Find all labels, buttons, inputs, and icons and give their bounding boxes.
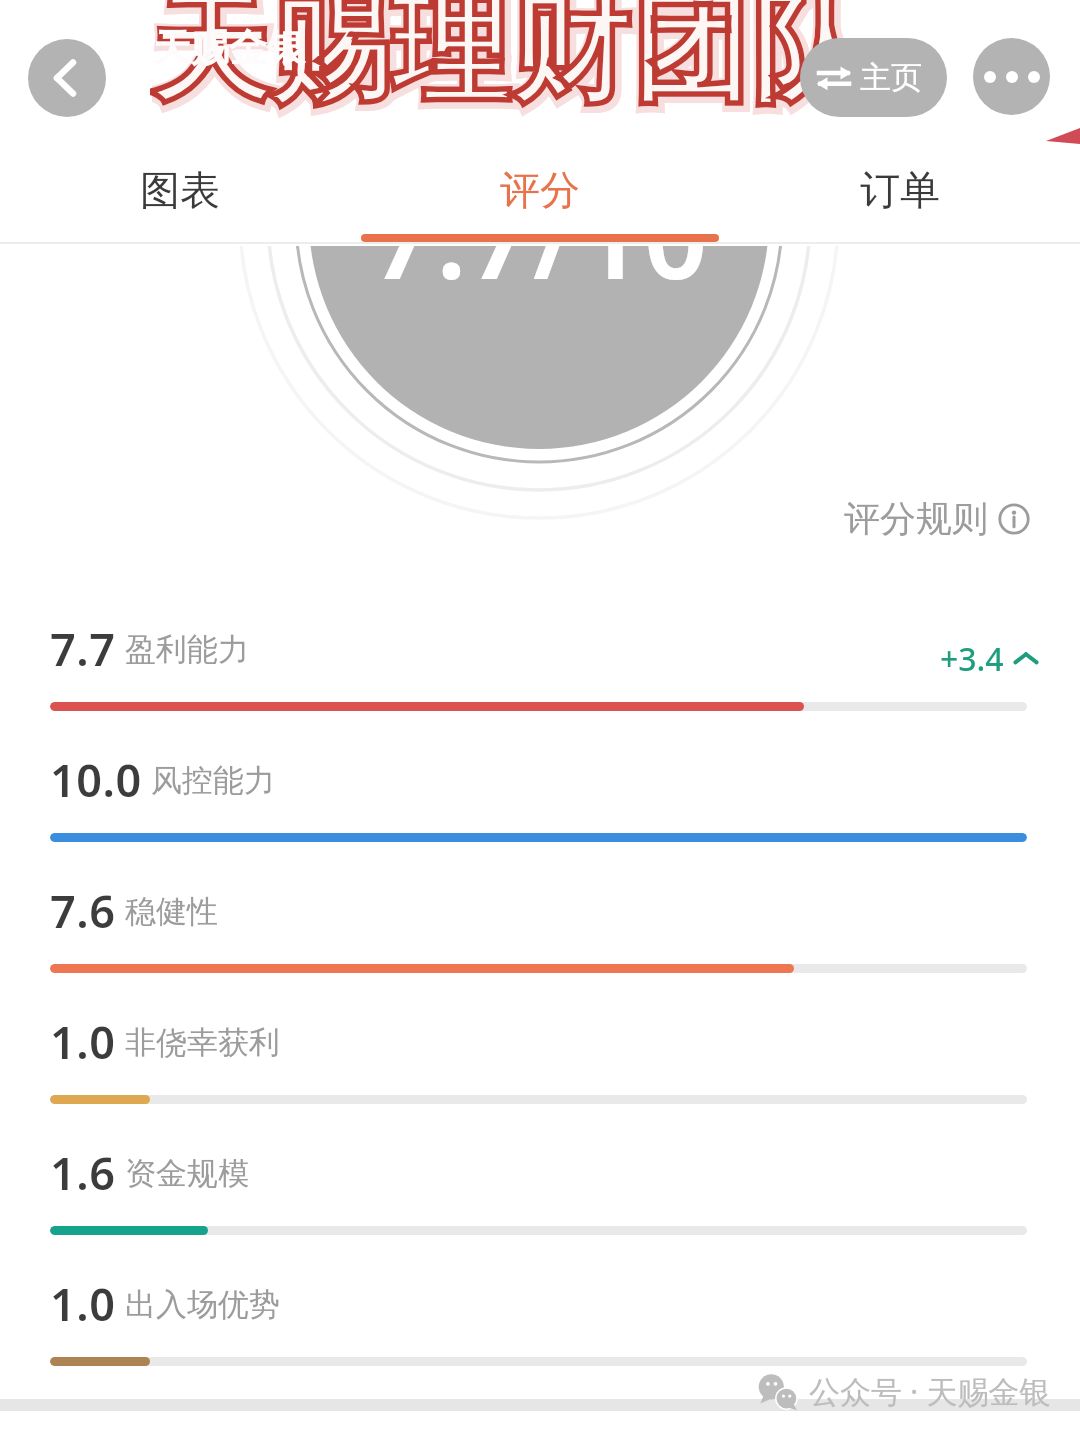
button[interactable]: 1.0 — [50, 1011, 280, 1072]
staticText: 天赐金银 — [153, 24, 305, 72]
staticText: 盈利能力 — [125, 630, 249, 669]
staticText: +3.4 — [940, 637, 1004, 681]
staticText: 评分 — [500, 165, 580, 215]
staticText: 风控能力 — [151, 761, 275, 800]
button[interactable]: 1.6 — [50, 1142, 249, 1203]
staticText: 资金规模 — [125, 1154, 249, 1193]
button[interactable]: 7.7 — [50, 618, 249, 679]
staticText: 订单 — [860, 165, 940, 215]
button[interactable]: 主页 — [800, 38, 947, 117]
button[interactable]: 10.0 — [50, 749, 275, 810]
button[interactable]: 1.0 — [50, 1273, 280, 1334]
staticText: 主页 — [860, 58, 922, 97]
button[interactable]: 评分 — [360, 140, 720, 245]
staticText: 图表 — [140, 165, 220, 215]
staticText: 7.7/10 — [371, 246, 709, 312]
staticText: 评分规则 — [844, 496, 988, 541]
staticText: 天赐理财团队 — [152, 0, 872, 123]
button[interactable]: 订单 — [720, 140, 1080, 245]
staticText: 1.0 — [50, 1011, 116, 1072]
staticText: 非侥幸获利 — [125, 1023, 280, 1062]
staticText: 出入场优势 — [125, 1285, 280, 1324]
staticText: 10.0 — [50, 749, 142, 810]
button[interactable]: More options — [973, 38, 1050, 115]
staticText: 稳健性 — [125, 892, 218, 931]
staticText: 7.6 — [50, 880, 116, 941]
button[interactable]: 7.6 — [50, 880, 218, 941]
staticText: 公众号 · 天赐金银 — [809, 1370, 1051, 1412]
button[interactable]: Back — [28, 39, 106, 117]
staticText: 7.7 — [50, 618, 116, 679]
button[interactable]: 评分规则 — [844, 496, 1030, 541]
staticText: 天赐理财团队 — [150, 0, 870, 121]
button[interactable]: 图表 — [0, 140, 360, 245]
staticText: 1.0 — [50, 1273, 116, 1334]
staticText: 天赐理财团队 — [150, 0, 870, 121]
staticText: 1.6 — [50, 1142, 116, 1203]
